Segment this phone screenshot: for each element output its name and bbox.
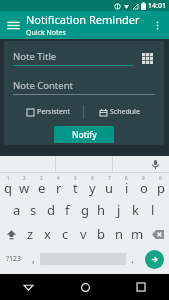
button[interactable]: n xyxy=(110,222,128,246)
button[interactable]: x xyxy=(39,222,56,246)
button[interactable]: d xyxy=(42,198,59,222)
button[interactable]: 2 xyxy=(16,173,33,198)
staticText: 7 xyxy=(108,175,111,181)
button[interactable]: 8 xyxy=(118,173,135,198)
button[interactable]: 5 xyxy=(67,173,84,198)
staticText: 14:01 xyxy=(148,1,166,11)
staticText: g xyxy=(81,201,89,219)
staticText: p xyxy=(157,179,165,197)
button[interactable]: j xyxy=(110,198,127,222)
staticText: Note Title xyxy=(13,50,57,63)
staticText: 9 xyxy=(142,175,145,181)
button[interactable]: Enter xyxy=(145,250,164,269)
staticText: y xyxy=(89,179,96,197)
staticText: f xyxy=(65,201,70,219)
staticText: , xyxy=(32,252,35,266)
button[interactable]: b xyxy=(92,222,110,246)
button[interactable]: Notify xyxy=(54,126,114,143)
staticText: t xyxy=(73,179,78,197)
staticText: Quick Notes xyxy=(26,28,66,38)
staticText: 2 xyxy=(23,175,26,181)
button[interactable]: k xyxy=(127,198,144,222)
staticText: k xyxy=(132,201,139,219)
button[interactable]: Shift xyxy=(0,222,22,246)
staticText: x xyxy=(44,225,51,243)
staticText: 8 xyxy=(125,175,128,181)
button[interactable]: 4 xyxy=(50,173,67,198)
staticText: h xyxy=(97,201,106,219)
staticText: l xyxy=(151,201,155,219)
button[interactable]: l xyxy=(144,198,161,222)
button[interactable]: Schedule xyxy=(84,107,155,117)
button[interactable]: v xyxy=(74,222,92,246)
button[interactable]: 7 xyxy=(101,173,118,198)
staticText: z xyxy=(27,225,34,243)
button[interactable]: More options xyxy=(148,16,166,34)
staticText: Notify xyxy=(72,129,97,141)
button[interactable]: 1 xyxy=(0,173,16,198)
button[interactable]: ?123 xyxy=(0,246,27,272)
staticText: 4 xyxy=(57,175,60,181)
button[interactable]: m xyxy=(128,222,146,246)
staticText: e xyxy=(38,179,46,197)
staticText: b xyxy=(97,225,105,243)
button[interactable]: Backspace xyxy=(146,222,169,246)
button[interactable]: g xyxy=(76,198,93,222)
staticText: r xyxy=(56,179,62,197)
staticText: 5 xyxy=(74,175,77,181)
button[interactable]: Templates xyxy=(139,50,155,66)
button[interactable]: 3 xyxy=(33,173,50,198)
staticText: . xyxy=(131,252,134,266)
staticText: Schedule xyxy=(110,107,140,117)
button[interactable]: h xyxy=(93,198,110,222)
button[interactable]: , xyxy=(27,246,40,272)
button[interactable]: 9 xyxy=(135,173,152,198)
button[interactable]: s xyxy=(25,198,42,222)
staticText: o xyxy=(140,179,148,197)
staticText: ?123 xyxy=(6,254,22,264)
button[interactable]: Home xyxy=(57,274,113,300)
staticText: Persistent xyxy=(37,107,70,117)
staticText: 1 xyxy=(7,175,10,181)
staticText: s xyxy=(30,201,37,219)
button[interactable]: Open navigation menu xyxy=(4,16,22,34)
staticText: n xyxy=(115,225,124,243)
button[interactable]: 6 xyxy=(84,173,101,198)
staticText: a xyxy=(13,201,21,219)
button[interactable]: 0 xyxy=(152,173,169,198)
button[interactable]: c xyxy=(56,222,74,246)
button[interactable]: Back xyxy=(0,274,57,300)
staticText: Notification Reminder xyxy=(26,12,140,27)
button[interactable]: Persistent xyxy=(13,107,83,117)
button[interactable]: z xyxy=(22,222,39,246)
button[interactable]: f xyxy=(59,198,76,222)
staticText: d xyxy=(47,201,55,219)
staticText: 3 xyxy=(40,175,43,181)
staticText: j xyxy=(117,201,121,219)
staticText: q xyxy=(4,179,12,197)
button[interactable]: Voice input xyxy=(149,158,161,170)
staticText: u xyxy=(105,179,114,197)
button[interactable]: Recent apps xyxy=(113,274,169,300)
button[interactable]: a xyxy=(8,198,25,222)
staticText: Note Content xyxy=(13,79,73,92)
button[interactable]: . xyxy=(126,246,139,272)
staticText: 6 xyxy=(91,175,94,181)
staticText: i xyxy=(125,179,129,197)
staticText: 0 xyxy=(159,175,162,181)
staticText: v xyxy=(80,225,87,243)
staticText: w xyxy=(19,179,30,197)
staticText: m xyxy=(131,225,144,243)
staticText: c xyxy=(62,225,69,243)
